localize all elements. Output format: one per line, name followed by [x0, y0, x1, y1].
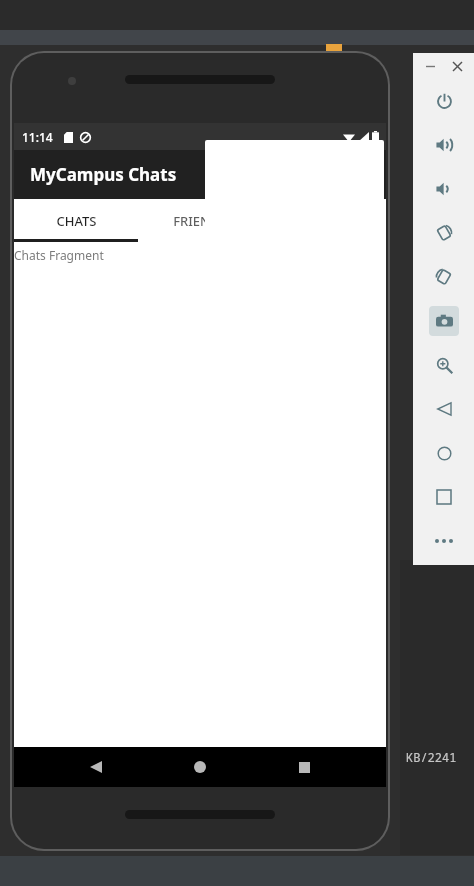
- staticText: 11:14: [22, 129, 53, 145]
- button[interactable]: Back: [413, 387, 474, 431]
- button[interactable]: Zoom: [413, 343, 474, 387]
- button[interactable]: Minimize: [420, 56, 440, 76]
- button[interactable]: Screenshot: [413, 299, 474, 343]
- button[interactable]: Home: [413, 431, 474, 475]
- button[interactable]: Home: [178, 747, 222, 787]
- button[interactable]: Volume up: [413, 123, 474, 167]
- button[interactable]: Volume down: [413, 167, 474, 211]
- staticText: MyCampus Chats: [30, 163, 177, 186]
- button[interactable]: CHATS: [14, 199, 138, 242]
- button[interactable]: Power: [413, 79, 474, 123]
- staticText: Chats Fragment: [14, 247, 104, 263]
- button[interactable]: Rotate right: [413, 255, 474, 299]
- button[interactable]: MyCampus Chats: [14, 150, 386, 199]
- button[interactable]: Close: [447, 56, 467, 76]
- button[interactable]: Back: [74, 747, 118, 787]
- button[interactable]: Recent apps: [282, 747, 326, 787]
- button[interactable]: Rotate left: [413, 211, 474, 255]
- button[interactable]: More: [413, 519, 474, 563]
- staticText: FRIENDS: [173, 212, 227, 230]
- staticText: CHATS: [56, 212, 97, 230]
- button[interactable]: Overview: [413, 475, 474, 519]
- button[interactable]: FRIENDS: [138, 199, 262, 242]
- staticText: KB/2241: [406, 749, 457, 765]
